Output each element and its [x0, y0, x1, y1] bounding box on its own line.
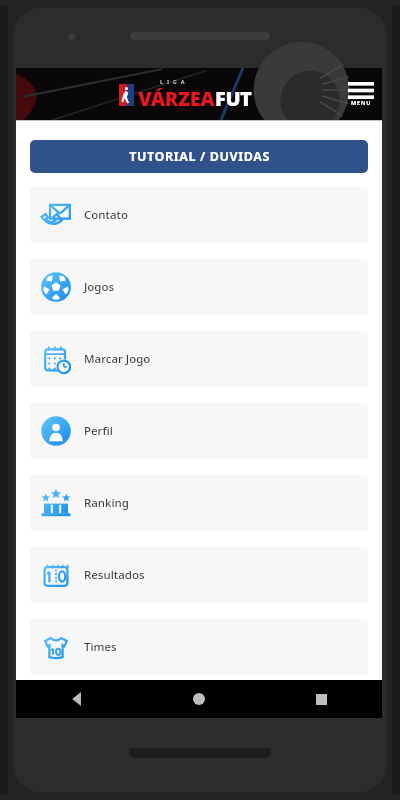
button[interactable]: Resultados — [30, 547, 368, 603]
staticText: MENU — [351, 99, 372, 106]
button[interactable]: Contato — [30, 187, 368, 243]
button[interactable]: Back — [16, 680, 138, 718]
button[interactable]: Jogos — [30, 259, 368, 315]
staticText: TUTORIAL / DUVIDAS — [129, 148, 270, 165]
button[interactable]: Menu — [348, 82, 374, 106]
button[interactable]: Recent apps — [260, 680, 382, 718]
staticText: Marcar Jogo — [84, 351, 151, 367]
staticText: VÁRZEA — [138, 85, 215, 112]
staticText: Times — [84, 639, 117, 655]
button[interactable]: TUTORIAL / DUVIDAS — [30, 140, 368, 173]
staticText: Contato — [84, 207, 128, 223]
staticText: FUT — [215, 85, 252, 112]
staticText: L I G A — [160, 78, 186, 85]
button[interactable]: Marcar Jogo — [30, 331, 368, 387]
staticText: Ranking — [84, 495, 129, 511]
button[interactable]: Home — [138, 680, 260, 718]
staticText: Perfil — [84, 423, 113, 439]
button[interactable]: Perfil — [30, 403, 368, 459]
staticText: Resultados — [84, 567, 145, 583]
button[interactable]: Times — [30, 619, 368, 675]
staticText: Jogos — [84, 279, 115, 295]
button[interactable]: Ranking — [30, 475, 368, 531]
